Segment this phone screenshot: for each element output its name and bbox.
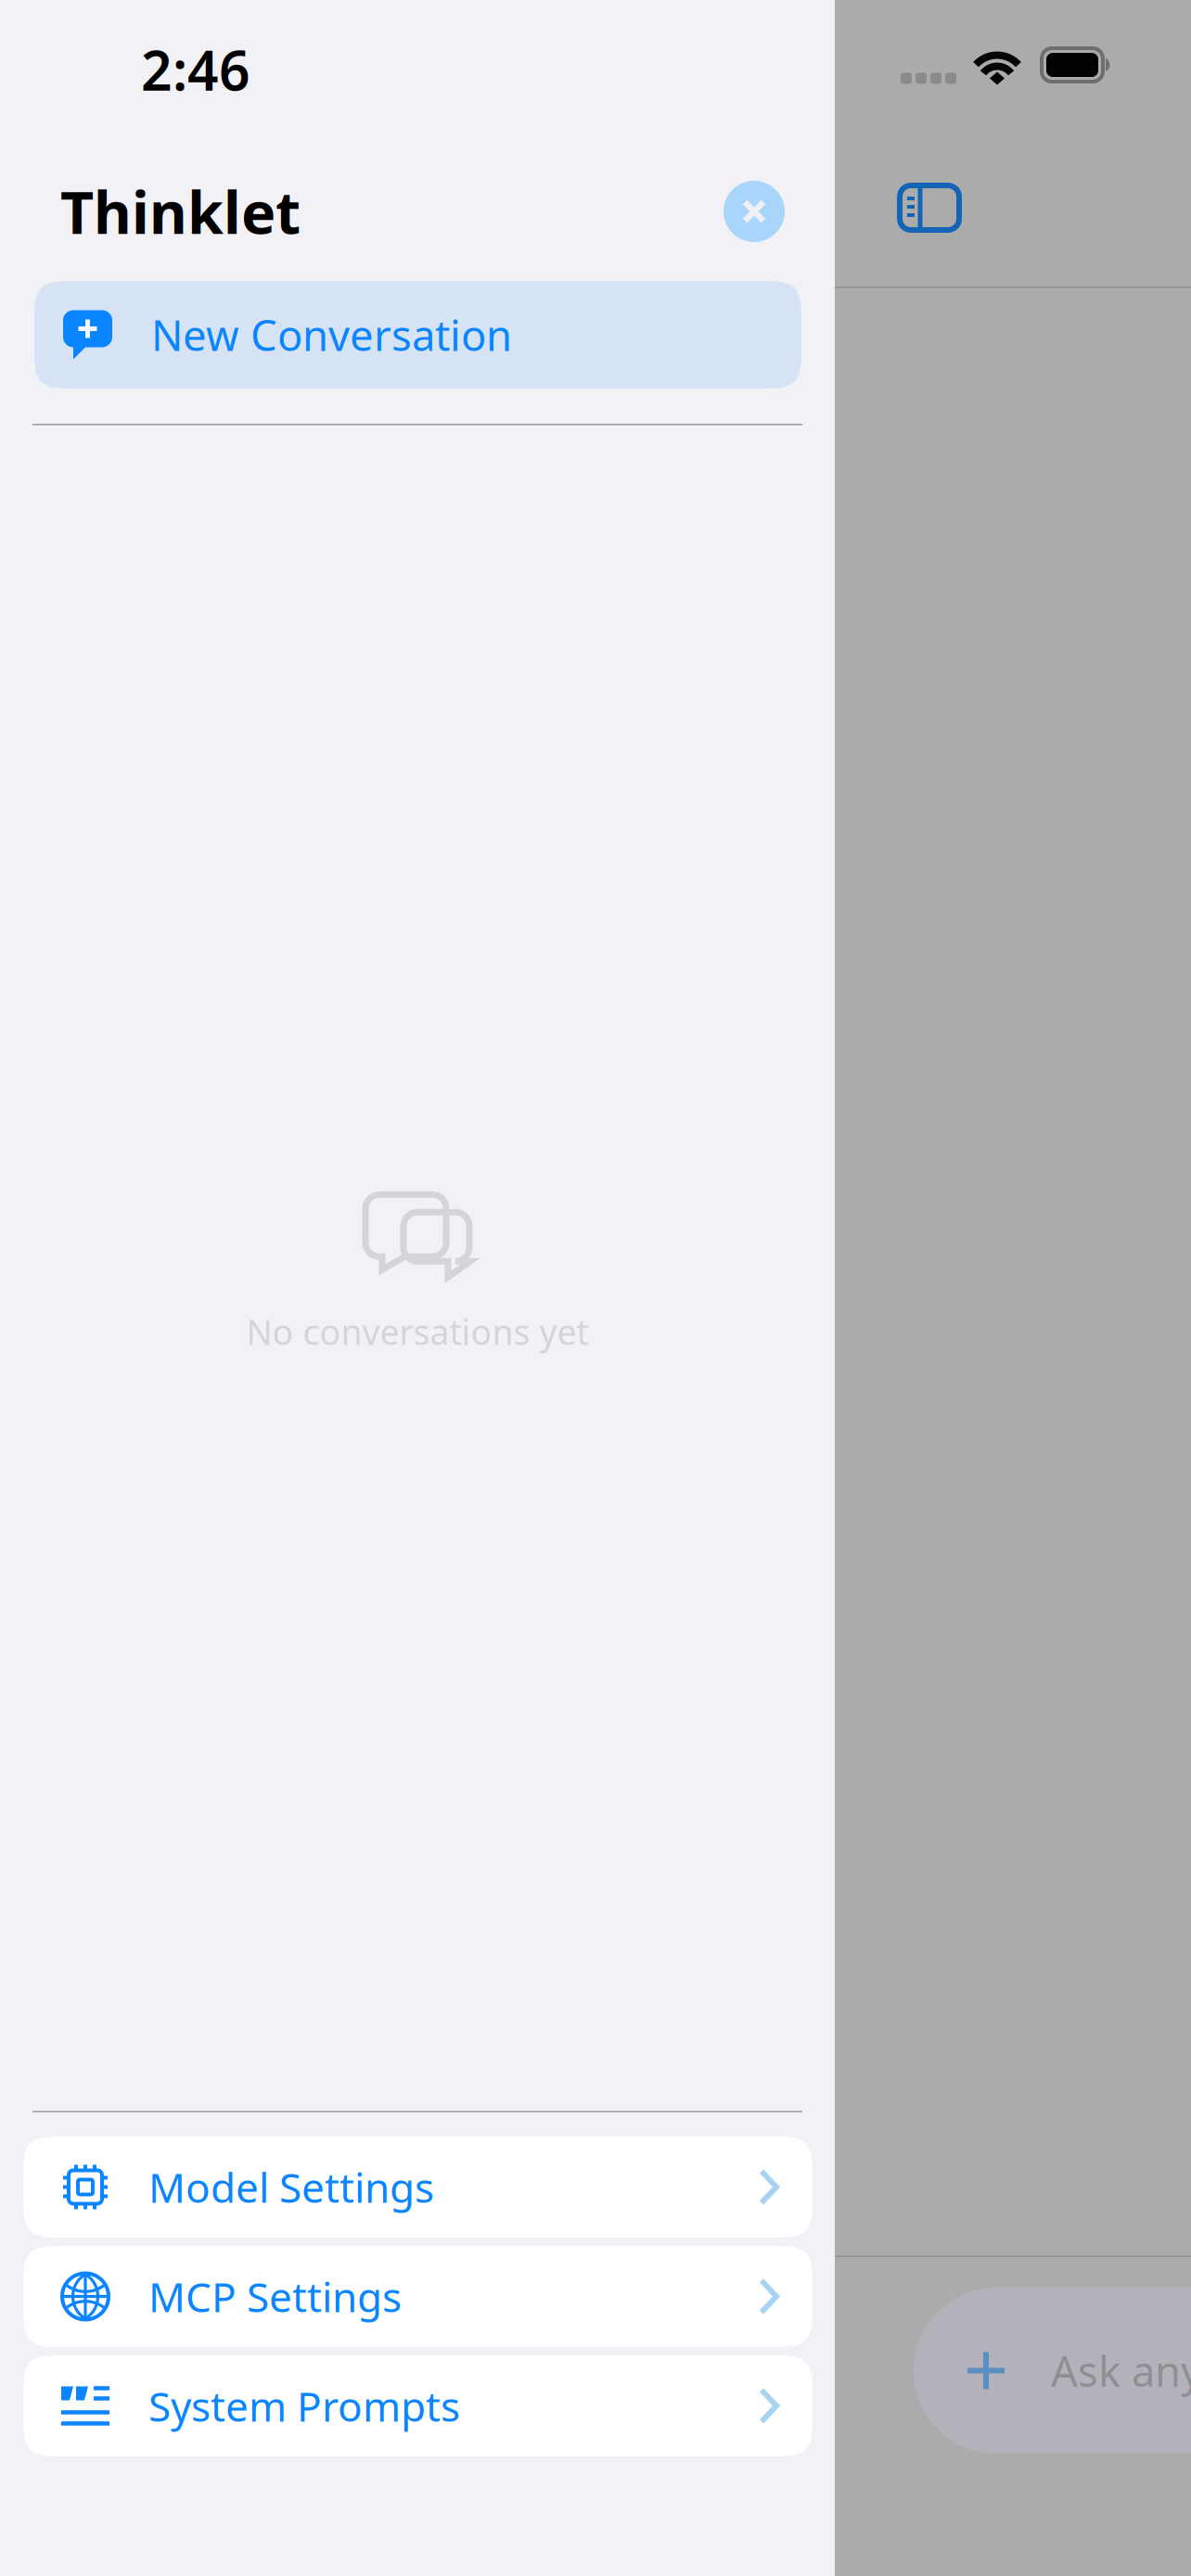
button[interactable]: MCP Settings	[23, 2246, 813, 2347]
staticText: New Conversation	[151, 307, 512, 363]
button[interactable]: Close sidebar	[724, 181, 785, 242]
button[interactable]: Show sidebar	[897, 183, 962, 233]
staticText: System Prompts	[148, 2379, 460, 2433]
staticText: MCP Settings	[148, 2269, 402, 2324]
button[interactable]: System Prompts	[23, 2355, 813, 2456]
staticText: 2:46	[141, 33, 250, 106]
staticText: No conversations yet	[246, 1309, 589, 1355]
staticText: Thinklet	[60, 173, 301, 250]
staticText: Ask anything	[1051, 2343, 1191, 2399]
button[interactable]: New Conversation	[34, 281, 801, 389]
staticText: Model Settings	[148, 2160, 434, 2214]
button[interactable]: Model Settings	[23, 2136, 813, 2238]
